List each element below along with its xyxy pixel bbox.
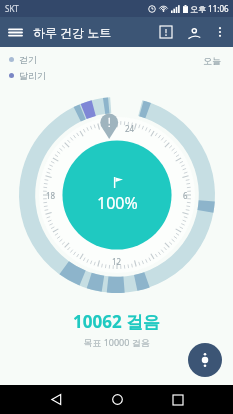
staticText: 오후 11:06	[190, 3, 229, 14]
button[interactable]: Home	[102, 385, 132, 414]
button[interactable]: Route	[180, 19, 207, 46]
staticText: 목표 10000 걸음	[0, 336, 233, 348]
staticText: 오늘	[203, 55, 221, 66]
staticText: 18	[46, 190, 56, 201]
button[interactable]: More options	[207, 19, 233, 45]
staticText: 6	[183, 190, 188, 201]
staticText: 하루 건강 노트	[33, 24, 112, 40]
staticText: 24	[125, 123, 135, 134]
button[interactable]: 걷기	[7, 53, 39, 66]
staticText: 달리기	[19, 70, 46, 81]
button[interactable]: Menu	[0, 17, 30, 47]
button[interactable]: Back	[41, 385, 71, 414]
button[interactable]: Recent apps	[163, 385, 193, 414]
button[interactable]: Daily note	[152, 18, 180, 46]
button[interactable]: Add activity	[188, 343, 222, 377]
staticText: 10062 걸음	[0, 310, 233, 333]
staticText: SKT	[5, 3, 19, 14]
button[interactable]: 오늘	[200, 53, 224, 68]
staticText: 100%	[97, 192, 138, 214]
staticText: 12	[112, 256, 122, 267]
staticText: 걷기	[19, 54, 37, 65]
button[interactable]: 달리기	[7, 69, 48, 82]
